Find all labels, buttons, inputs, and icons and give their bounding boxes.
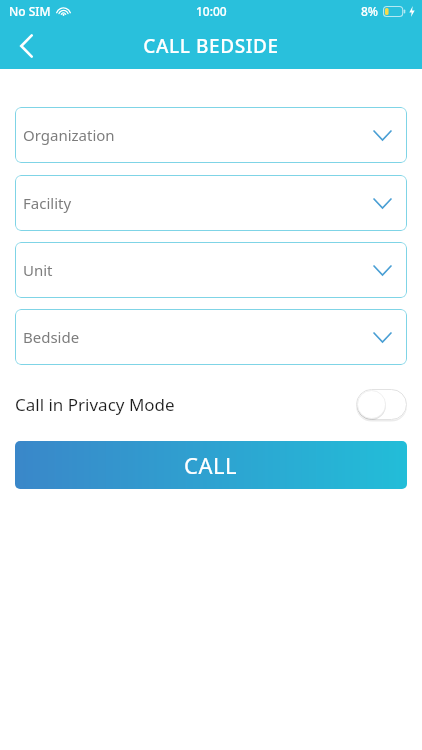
staticText: 8%	[361, 3, 379, 19]
button[interactable]: Unit	[15, 242, 407, 298]
staticText: Call in Privacy Mode	[15, 393, 175, 416]
other: Call in Privacy Mode toggle	[356, 389, 407, 420]
button[interactable]: Facility	[15, 175, 407, 231]
staticText: Organization	[23, 125, 115, 145]
button[interactable]: CALL	[15, 441, 407, 489]
button[interactable]: Back	[0, 22, 52, 69]
button[interactable]: Bedside	[15, 309, 407, 365]
button[interactable]: Call in Privacy Mode	[15, 387, 407, 421]
staticText: CALL	[184, 450, 238, 480]
staticText: Facility	[23, 193, 72, 213]
staticText: 10:00	[196, 3, 227, 19]
staticText: CALL BEDSIDE	[143, 33, 279, 59]
staticText: Unit	[23, 260, 53, 280]
button[interactable]: Organization	[15, 107, 407, 163]
staticText: No SIM	[9, 3, 51, 19]
staticText: Bedside	[23, 327, 80, 347]
